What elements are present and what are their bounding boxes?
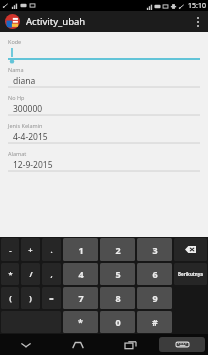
staticText: 3 (152, 244, 158, 256)
staticText: 0 (115, 316, 121, 328)
staticText: 8 (115, 292, 121, 304)
button[interactable]: # (137, 311, 172, 333)
button[interactable]: / (21, 263, 40, 285)
button[interactable]: Hide keyboard (0, 334, 52, 355)
button[interactable]: , (42, 263, 61, 285)
staticText: Berikutnya (178, 271, 203, 277)
staticText: No Hp (8, 94, 25, 101)
staticText: Nama (8, 66, 24, 73)
staticText: 6 (152, 268, 158, 280)
staticText: . (50, 245, 53, 255)
button[interactable]: 6 (137, 263, 172, 285)
staticText: diana (13, 75, 36, 86)
staticText: 4 (78, 268, 84, 280)
staticText: 9 (152, 292, 158, 304)
staticText: / (29, 269, 33, 279)
button[interactable]: Berikutnya (174, 263, 207, 285)
button[interactable]: 9 (137, 287, 172, 309)
staticText: Kode (8, 38, 22, 45)
button[interactable]: ) (21, 287, 40, 309)
staticText: Alamat (8, 150, 27, 157)
button[interactable]: 1 (63, 238, 98, 261)
staticText: 7 (78, 292, 84, 304)
button[interactable]: * (63, 311, 98, 333)
button[interactable]: No Hp (0, 91, 208, 119)
button[interactable]: Nama (0, 63, 208, 91)
staticText: , (50, 269, 53, 279)
button[interactable]: ( (1, 287, 19, 309)
button[interactable]: More options (188, 11, 208, 32)
staticText: Activity_ubah (26, 15, 86, 28)
button[interactable]: = (42, 287, 61, 309)
staticText: * (8, 269, 13, 279)
staticText: - (9, 245, 12, 255)
staticText: ( (9, 293, 12, 303)
button[interactable]: 2 (100, 238, 135, 261)
button[interactable]: 5 (100, 263, 135, 285)
button[interactable]: + (21, 238, 40, 261)
button[interactable]: * (1, 263, 19, 285)
staticText: + (28, 245, 33, 255)
button[interactable]: Recent apps (104, 334, 156, 355)
staticText: Jenis Kelamin (8, 122, 43, 129)
staticText: 12-9-2015 (13, 159, 53, 170)
button[interactable]: 3 (137, 238, 172, 261)
staticText: 5 (115, 268, 121, 280)
staticText: 2 (115, 244, 121, 256)
button[interactable]: Alamat (0, 147, 208, 175)
staticText: = (49, 293, 54, 303)
button[interactable]: - (1, 238, 19, 261)
staticText: 15:10 (188, 1, 206, 11)
staticText: 4-4-2015 (13, 131, 48, 142)
staticText: * (78, 316, 83, 328)
button[interactable]: Kode (0, 35, 208, 63)
staticText: 1 (78, 244, 84, 256)
button[interactable]: 8 (100, 287, 135, 309)
staticText: # (152, 316, 158, 328)
button[interactable]: Home (52, 334, 104, 355)
button[interactable]: App icon (5, 14, 20, 29)
staticText: ) (29, 293, 32, 303)
button[interactable]: Jenis Kelamin (0, 119, 208, 147)
button[interactable]: 0 (100, 311, 135, 333)
button[interactable]: . (42, 238, 61, 261)
button[interactable]: Switch keyboard (159, 337, 205, 352)
staticText: 300000 (13, 103, 43, 114)
button[interactable]: 4 (63, 263, 98, 285)
button[interactable]: 7 (63, 287, 98, 309)
button[interactable]: Backspace (174, 238, 207, 261)
